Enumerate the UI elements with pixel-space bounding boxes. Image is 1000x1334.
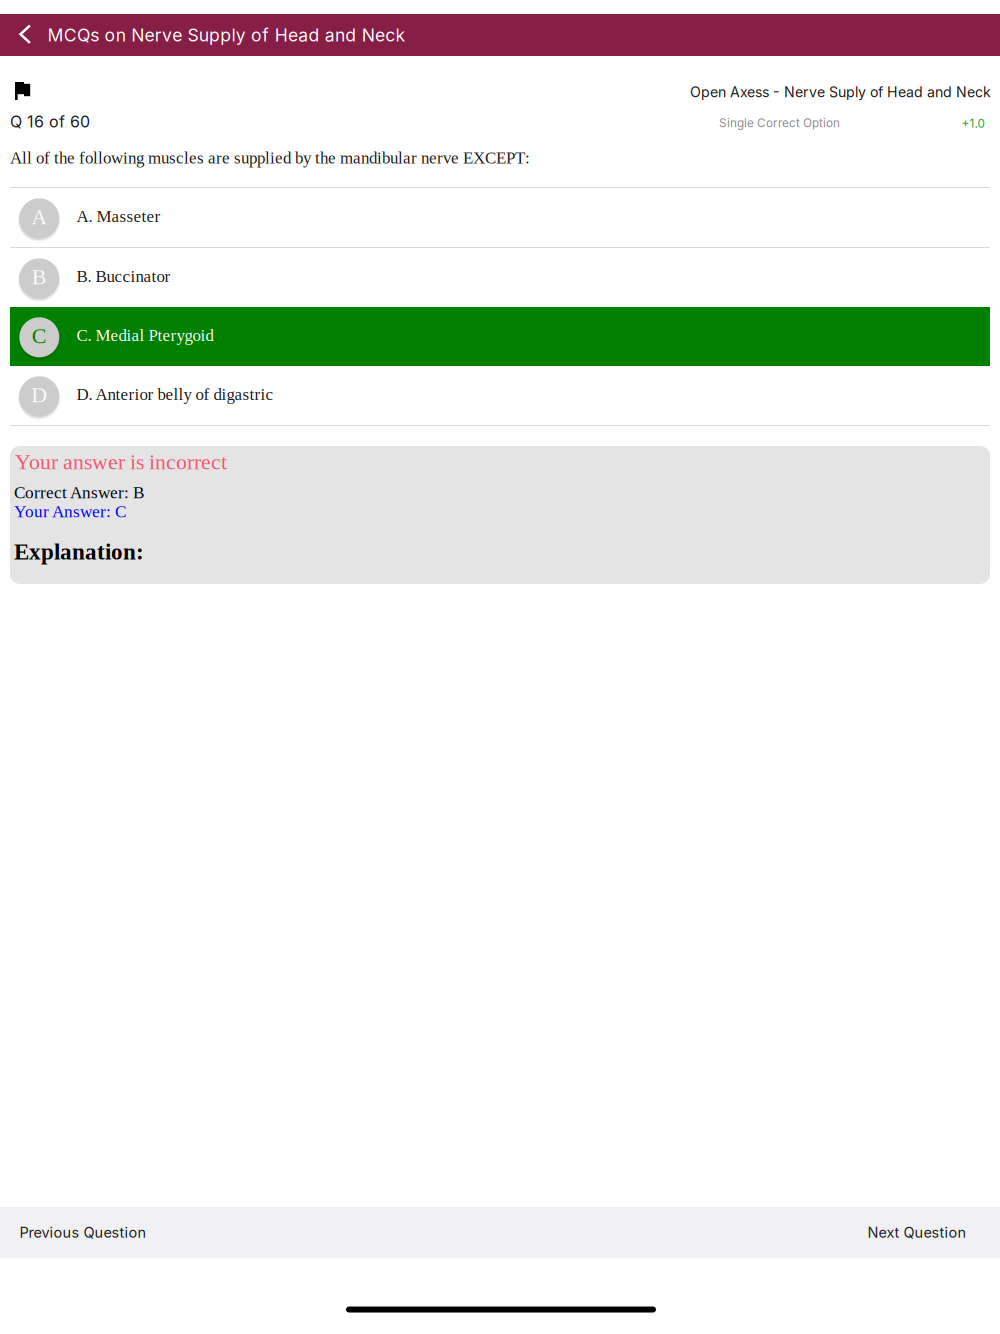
button[interactable]: Previous Question: [8, 1207, 158, 1258]
staticText: Your answer is incorrect: [15, 450, 227, 474]
button[interactable]: A: [10, 188, 990, 247]
staticText: Q 16 of 60: [10, 112, 90, 131]
button[interactable]: D: [10, 366, 990, 425]
button[interactable]: B: [10, 248, 990, 307]
staticText: Single Correct Option: [719, 116, 840, 130]
staticText: D. Anterior belly of digastric: [76, 385, 273, 404]
staticText: Correct Answer: B: [14, 483, 144, 502]
staticText: Your Answer: C: [14, 502, 126, 521]
staticText: C: [32, 324, 47, 348]
staticText: A: [31, 205, 47, 229]
button[interactable]: C: [10, 307, 990, 366]
staticText: B. Buccinator: [76, 267, 170, 286]
staticText: MCQs on Nerve Supply of Head and Neck: [47, 24, 405, 46]
button[interactable]: Flag question: [6, 76, 40, 106]
staticText: +1.0: [961, 116, 984, 130]
staticText: Open Axess - Nerve Suply of Head and Nec…: [690, 83, 991, 100]
staticText: Explanation:: [14, 539, 144, 564]
button[interactable]: Back: [8, 13, 42, 55]
staticText: B: [32, 265, 47, 289]
button[interactable]: Next Question: [852, 1207, 982, 1258]
staticText: D: [31, 383, 47, 407]
staticText: A. Masseter: [76, 207, 160, 226]
staticText: All of the following muscles are supplie…: [10, 148, 530, 167]
staticText: Previous Question: [19, 1224, 146, 1241]
staticText: C. Medial Pterygoid: [76, 326, 213, 345]
staticText: Next Question: [867, 1224, 966, 1241]
